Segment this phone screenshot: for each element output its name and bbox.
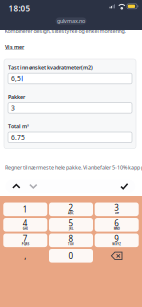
staticText: 2 — [68, 202, 73, 213]
staticText: 3 — [114, 202, 119, 213]
button[interactable]: 3 — [95, 202, 139, 216]
staticText: PQRS — [22, 242, 29, 246]
staticText: 1 — [23, 204, 28, 215]
button[interactable]: 1 — [3, 202, 47, 216]
staticText: 3 — [11, 103, 15, 112]
button[interactable]: Next field — [25, 180, 42, 193]
staticText: GHI — [23, 227, 28, 230]
button[interactable]: Delete — [95, 249, 139, 263]
staticText: 6,5 — [11, 74, 21, 83]
button[interactable]: 7 — [3, 233, 47, 247]
button[interactable]: 4 — [3, 218, 47, 232]
button[interactable]: Vis mer — [5, 43, 24, 51]
staticText: DEF — [115, 211, 119, 215]
staticText: JKL — [69, 227, 73, 230]
staticText: gulvmax.no — [57, 17, 85, 25]
button[interactable]: 2 — [49, 202, 93, 216]
staticText: 5 — [68, 218, 73, 228]
button[interactable]: 6 — [95, 218, 139, 232]
staticText: 8 — [68, 233, 73, 244]
staticText: WXYZ — [112, 242, 121, 246]
button[interactable]: 0 — [49, 249, 93, 263]
staticText: Pakker — [8, 93, 25, 100]
staticText: 4 — [23, 218, 28, 228]
staticText: Regner til nærmeste hele pakke. Vi anbef… — [5, 164, 142, 171]
button[interactable]: 5 — [49, 218, 93, 232]
staticText: Tast inn ønsket kvadratmeter(m2) — [8, 64, 93, 71]
staticText: Kombinerer design, slitestyrke og enkel … — [4, 27, 125, 35]
button[interactable]: gulvmax.no — [55, 17, 86, 25]
button[interactable]: Done — [116, 180, 133, 193]
staticText: Total m² — [8, 123, 29, 130]
staticText: 6.75 — [11, 133, 25, 142]
button[interactable]: 9 — [95, 233, 139, 247]
staticText: ABC — [68, 211, 74, 215]
button[interactable]: , — [3, 249, 47, 263]
button[interactable]: 8 — [49, 233, 93, 247]
staticText: 0 — [68, 250, 73, 261]
staticText: 7 — [23, 233, 28, 244]
staticText: MNO — [114, 227, 120, 230]
staticText: 9 — [114, 233, 119, 244]
staticText: Vis mer — [5, 43, 24, 51]
staticText: , — [24, 250, 26, 261]
button[interactable]: Previous field — [8, 180, 25, 193]
staticText: 18:05 — [8, 3, 30, 14]
staticText: TUV — [68, 242, 74, 246]
staticText: 6 — [114, 218, 119, 228]
